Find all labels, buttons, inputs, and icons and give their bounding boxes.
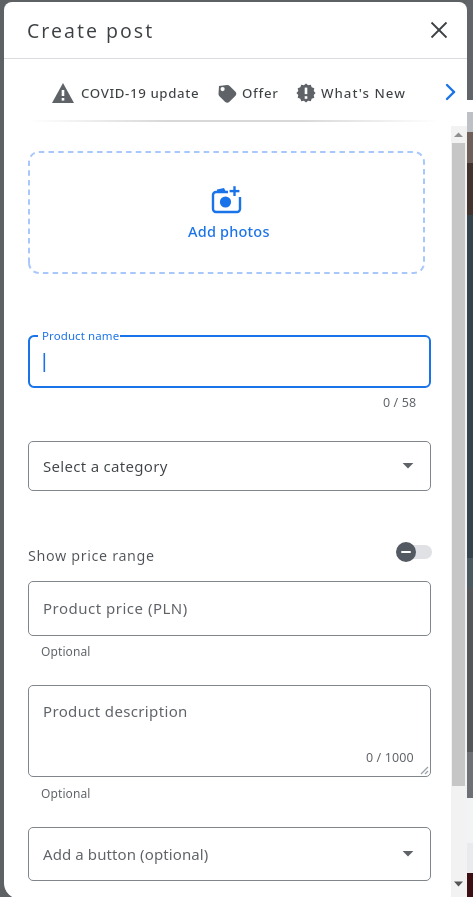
button[interactable]: Add a button (optional): [28, 827, 431, 881]
button[interactable]: [438, 78, 464, 106]
staticText: Show price range: [28, 546, 155, 565]
button[interactable]: Offer: [214, 76, 294, 110]
button[interactable]: Product description: [28, 685, 431, 777]
button[interactable]: COVID-19 update: [48, 76, 208, 110]
button[interactable]: Select a category: [28, 441, 431, 491]
staticText: Select a category: [43, 456, 168, 476]
button[interactable]: Product price (PLN): [28, 581, 431, 636]
staticText: Optional: [41, 785, 91, 801]
staticText: Add a button (optional): [43, 844, 209, 864]
staticText: Add photos: [188, 221, 270, 241]
button[interactable]: Add photos: [28, 151, 425, 274]
staticText: Offer: [242, 84, 279, 102]
button[interactable]: [392, 538, 436, 566]
staticText: What's New: [321, 84, 406, 102]
button[interactable]: [423, 14, 455, 46]
staticText: Optional: [41, 643, 91, 659]
staticText: Product description: [43, 701, 188, 721]
staticText: COVID-19 update: [81, 84, 200, 102]
staticText: 0 / 58: [383, 394, 417, 411]
button[interactable]: [28, 335, 431, 388]
button[interactable]: What's New: [294, 76, 414, 110]
staticText: Product name: [42, 328, 120, 344]
staticText: Create post: [27, 17, 155, 44]
staticText: Product price (PLN): [43, 598, 188, 618]
staticText: 0 / 1000: [366, 749, 414, 766]
